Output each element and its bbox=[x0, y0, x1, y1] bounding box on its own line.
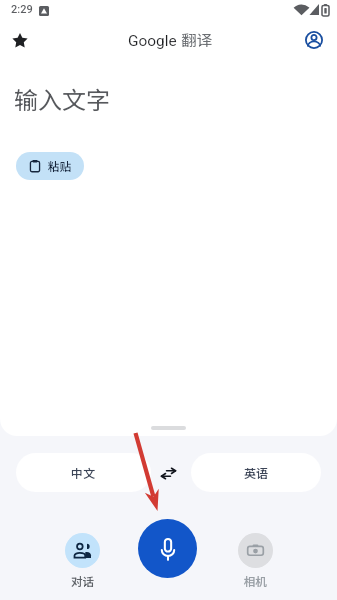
button[interactable]: 中文 bbox=[16, 453, 151, 492]
button[interactable]: Microphone bbox=[138, 519, 197, 578]
staticText: 英语 bbox=[244, 464, 269, 481]
staticText: 2:29 bbox=[11, 3, 33, 16]
button[interactable]: Account bbox=[296, 22, 332, 58]
staticText: 粘贴 bbox=[48, 158, 71, 175]
staticText: 翻译 bbox=[181, 28, 213, 50]
button[interactable]: Saved bbox=[2, 22, 38, 58]
staticText: 相机 bbox=[244, 573, 267, 590]
button[interactable]: 粘贴 bbox=[16, 152, 84, 180]
button[interactable]: 英语 bbox=[191, 453, 321, 492]
staticText: 对话 bbox=[71, 573, 94, 590]
button[interactable]: 对话 bbox=[46, 533, 118, 590]
staticText: Google bbox=[128, 32, 177, 50]
button[interactable]: Swap languages bbox=[151, 453, 191, 492]
staticText: 输入文字 bbox=[14, 81, 110, 116]
staticText: 中文 bbox=[71, 464, 96, 481]
button[interactable]: 相机 bbox=[219, 533, 291, 590]
